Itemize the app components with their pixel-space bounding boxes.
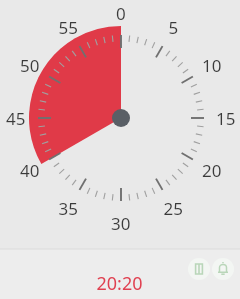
- button[interactable]: Alarm: [212, 258, 234, 280]
- button[interactable]: Timer dial, 20 minutes: [0, 0, 240, 299]
- button[interactable]: Timer presets: [188, 258, 210, 280]
